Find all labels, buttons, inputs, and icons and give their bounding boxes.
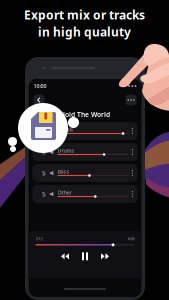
button[interactable]: S — [32, 164, 137, 182]
staticText: Bass — [57, 168, 69, 175]
staticText: 0:12 — [35, 236, 42, 241]
staticText: S — [42, 190, 46, 198]
staticText: S — [42, 148, 46, 156]
staticText: 10:00 — [33, 82, 46, 90]
button[interactable]: Back — [33, 94, 44, 105]
button[interactable]: Pause — [82, 252, 88, 260]
button[interactable]: More options — [125, 94, 136, 105]
button[interactable]: S — [32, 185, 137, 203]
button[interactable]: Next track — [101, 253, 109, 259]
button[interactable]: S — [32, 122, 137, 140]
button[interactable]: Previous track — [61, 253, 69, 259]
staticText: in high qualuty — [38, 24, 131, 40]
staticText: Other — [57, 189, 71, 196]
staticText: Hold The World — [60, 110, 110, 119]
staticText: 4:06 — [127, 236, 134, 241]
staticText: Vocals — [57, 126, 73, 133]
staticText: Export mix or tracks — [24, 7, 145, 23]
staticText: Drums — [57, 147, 74, 154]
button[interactable]: S — [32, 143, 137, 161]
staticText: S — [42, 169, 46, 177]
